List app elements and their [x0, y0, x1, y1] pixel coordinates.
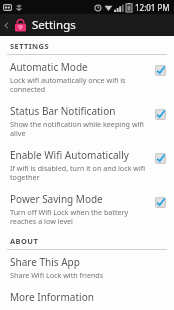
other: Back	[3, 22, 10, 29]
button[interactable]: Power Saving Mode	[0, 187, 174, 231]
staticText: Turn off Wifi Lock when the battery reac…	[10, 207, 151, 226]
staticText: Share This App	[10, 255, 80, 269]
staticText: Automatic Mode	[10, 60, 88, 74]
button[interactable]: Enable Wifi Automatically	[0, 143, 174, 187]
button[interactable]: Status Bar Notification	[0, 99, 174, 143]
staticText: Status Bar Notification	[10, 104, 116, 118]
button[interactable]: Back	[0, 14, 174, 36]
button[interactable]: More Information	[0, 285, 174, 310]
staticText: If wifi is disabled, turn it on and lock…	[10, 163, 151, 182]
staticText: Share Wifi Lock with friends	[10, 270, 104, 280]
staticText: SETTINGS	[10, 41, 49, 51]
button[interactable]: Share This App	[0, 250, 174, 285]
staticText: 12:01 PM	[135, 2, 170, 13]
staticText: Power Saving Mode	[10, 192, 103, 206]
button[interactable]: Automatic Mode	[0, 55, 174, 99]
staticText: Lock wifi automatically once wifi is con…	[10, 75, 151, 94]
staticText: Show the notification while keeping wifi…	[10, 119, 151, 138]
staticText: ABOUT	[10, 236, 39, 246]
staticText: More Information	[10, 290, 94, 304]
staticText: Enable Wifi Automatically	[10, 148, 129, 162]
staticText: Settings	[32, 17, 76, 33]
